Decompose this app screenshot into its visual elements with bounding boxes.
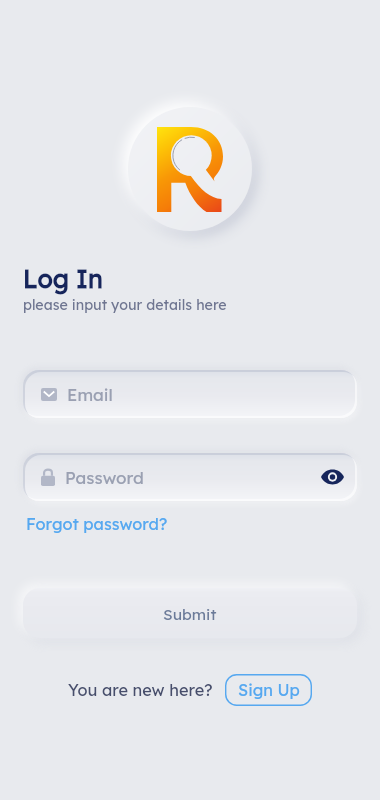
button[interactable]: Forgot password? (26, 514, 168, 534)
staticText: Email (67, 384, 113, 405)
staticText: Log In (23, 263, 103, 294)
staticText: Sign Up (238, 680, 300, 700)
button[interactable]: Submit (23, 588, 357, 638)
button[interactable]: Email (23, 370, 357, 418)
staticText: You are new here? (68, 680, 213, 700)
button[interactable]: Password (23, 453, 357, 501)
staticText: please input your details here (23, 296, 227, 314)
staticText: Submit (163, 604, 217, 623)
button[interactable]: Sign Up (225, 674, 312, 706)
button[interactable]: Show password (318, 463, 346, 491)
staticText: Password (65, 467, 144, 488)
